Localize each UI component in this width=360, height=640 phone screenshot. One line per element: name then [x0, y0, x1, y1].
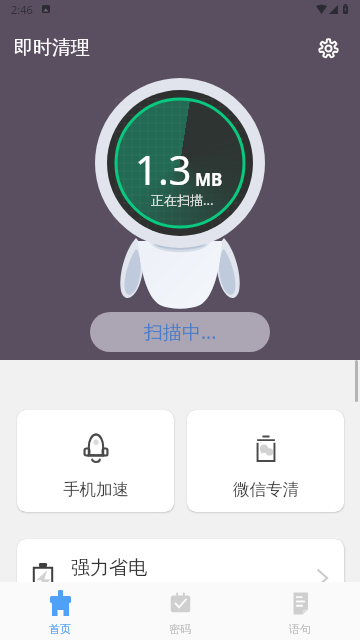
staticText: 手机加速	[63, 479, 129, 500]
staticText: MB	[195, 168, 223, 191]
button[interactable]: 微信专清	[187, 410, 344, 512]
staticText: 扫描中...	[144, 319, 217, 345]
staticText: 即时清理	[14, 36, 90, 60]
button[interactable]: 密码	[120, 582, 240, 640]
staticText: 首页	[49, 622, 71, 636]
staticText: 1.3	[135, 142, 192, 196]
staticText: 2:46	[11, 2, 33, 17]
button[interactable]: 语句	[240, 582, 360, 640]
staticText: 强力省电	[71, 556, 147, 580]
button[interactable]: Settings	[308, 28, 348, 68]
button[interactable]: 手机加速	[17, 410, 174, 512]
staticText: 正在扫描...	[151, 191, 214, 209]
staticText: 语句	[289, 622, 311, 636]
button[interactable]: 扫描中...	[90, 312, 270, 352]
staticText: 密码	[169, 622, 191, 636]
button[interactable]: 首页	[0, 582, 120, 640]
button[interactable]: 强力省电	[17, 539, 344, 603]
staticText: 微信专清	[233, 479, 299, 500]
